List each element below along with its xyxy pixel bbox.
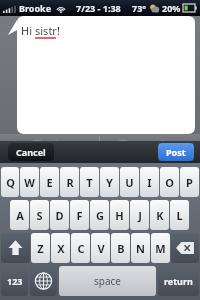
- staticText: Post: [166, 146, 186, 158]
- button[interactable]: B: [111, 233, 130, 263]
- button[interactable]: W: [20, 167, 39, 197]
- staticText: 7/23 - 1:38: [76, 2, 121, 14]
- button[interactable]: G: [90, 200, 109, 230]
- button[interactable]: Write: [0, 138, 99, 149]
- button[interactable]: Switch keyboard language: [30, 266, 57, 296]
- staticText: X: [57, 241, 65, 256]
- staticText: return: [164, 275, 193, 287]
- staticText: V: [97, 241, 105, 256]
- staticText: K: [156, 208, 164, 223]
- staticText: W: [24, 175, 35, 190]
- button[interactable]: Y: [100, 167, 119, 197]
- staticText: 20%: [162, 2, 181, 14]
- button[interactable]: E: [40, 167, 59, 197]
- button[interactable]: A: [10, 200, 29, 230]
- staticText: space: [94, 274, 121, 288]
- staticText: G: [96, 208, 104, 223]
- staticText: Brooke: [19, 2, 52, 14]
- button[interactable]: N: [131, 233, 150, 263]
- button[interactable]: R: [60, 167, 79, 197]
- staticText: I: [147, 175, 152, 190]
- button[interactable]: Cancel: [8, 143, 54, 161]
- staticText: U: [125, 175, 134, 190]
- button[interactable]: I: [140, 167, 159, 197]
- staticText: T: [86, 175, 93, 190]
- staticText: P: [186, 175, 193, 190]
- staticText: Hi: [21, 23, 35, 38]
- button[interactable]: space: [59, 266, 156, 296]
- staticText: R: [66, 175, 74, 190]
- button[interactable]: L: [170, 200, 189, 230]
- button[interactable]: O: [160, 167, 179, 197]
- staticText: 73°: [132, 2, 147, 14]
- staticText: O: [165, 175, 174, 190]
- button[interactable]: H: [110, 200, 129, 230]
- button[interactable]: S: [30, 200, 49, 230]
- button[interactable]: T: [80, 167, 99, 197]
- staticText: Y: [106, 175, 113, 190]
- staticText: sistr!: [35, 23, 60, 38]
- button[interactable]: P: [180, 167, 199, 197]
- staticText: 123: [7, 275, 23, 287]
- button[interactable]: K: [150, 200, 169, 230]
- button[interactable]: D: [50, 200, 69, 230]
- button[interactable]: M: [151, 233, 170, 263]
- button[interactable]: X: [51, 233, 70, 263]
- staticText: E: [46, 175, 53, 190]
- button[interactable]: Post a Photo: [100, 138, 200, 149]
- button[interactable]: U: [120, 167, 139, 197]
- staticText: M: [155, 241, 166, 256]
- staticText: Z: [37, 241, 44, 256]
- button[interactable]: V: [91, 233, 110, 263]
- staticText: B: [117, 241, 125, 256]
- staticText: Write: [44, 138, 66, 149]
- button[interactable]: C: [71, 233, 90, 263]
- button[interactable]: Q: [1, 167, 19, 197]
- staticText: Q: [6, 175, 15, 190]
- staticText: A: [16, 208, 24, 223]
- staticText: Post a Photo: [130, 138, 181, 149]
- staticText: Cancel: [16, 146, 46, 158]
- button[interactable]: Z: [31, 233, 50, 263]
- button[interactable]: Delete: [171, 233, 199, 263]
- button[interactable]: 123: [1, 266, 28, 296]
- button[interactable]: J: [130, 200, 149, 230]
- staticText: N: [136, 241, 145, 256]
- staticText: H: [115, 208, 124, 223]
- button[interactable]: Post: [158, 143, 194, 161]
- staticText: F: [76, 208, 83, 223]
- staticText: C: [77, 241, 85, 256]
- button[interactable]: Shift: [1, 233, 30, 263]
- button[interactable]: F: [70, 200, 89, 230]
- button[interactable]: return: [158, 266, 199, 296]
- staticText: S: [36, 208, 43, 223]
- staticText: J: [138, 208, 142, 223]
- staticText: D: [55, 208, 64, 223]
- staticText: L: [176, 208, 183, 223]
